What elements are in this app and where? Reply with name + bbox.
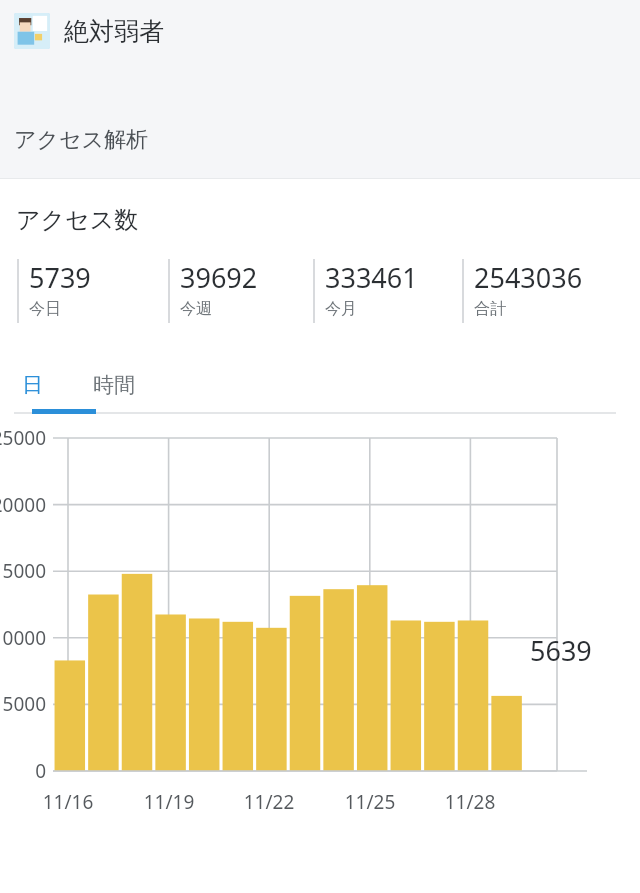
staticText: 絶対弱者 [64, 16, 164, 47]
staticText: 今週 [180, 299, 212, 319]
staticText: 15000 [0, 558, 46, 584]
staticText: 今月 [325, 299, 357, 319]
staticText: 11/28 [430, 789, 510, 815]
staticText: 2543036 [474, 259, 583, 296]
staticText: 25000 [0, 425, 46, 451]
staticText: 5639 [530, 632, 592, 669]
staticText: 今日 [29, 299, 61, 319]
button[interactable]: Profile avatar [0, 0, 640, 62]
staticText: 日 [22, 372, 43, 398]
staticText: 10000 [0, 625, 46, 651]
staticText: 11/25 [330, 789, 410, 815]
staticText: 5000 [0, 691, 46, 717]
button[interactable]: 日 [0, 361, 64, 409]
staticText: アクセス数 [16, 205, 139, 235]
staticText: 39692 [180, 259, 258, 296]
staticText: アクセス解析 [14, 126, 149, 154]
staticText: 11/16 [28, 789, 108, 815]
staticText: 5739 [29, 259, 91, 296]
other: Profile avatar [14, 13, 50, 49]
button[interactable]: 時間 [64, 361, 164, 409]
staticText: 11/19 [129, 789, 209, 815]
staticText: 333461 [325, 259, 418, 296]
staticText: 合計 [474, 299, 506, 319]
staticText: 時間 [93, 372, 135, 398]
staticText: 0 [0, 758, 46, 784]
staticText: 20000 [0, 492, 46, 518]
staticText: 11/22 [229, 789, 309, 815]
